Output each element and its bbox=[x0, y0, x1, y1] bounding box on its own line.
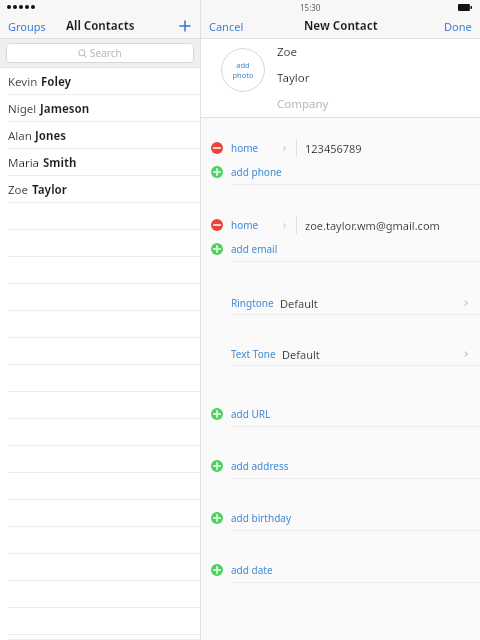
button[interactable] bbox=[0, 365, 200, 392]
staticText: Done bbox=[444, 19, 472, 34]
button[interactable]: Alan bbox=[0, 122, 200, 149]
staticText bbox=[32, 128, 35, 144]
button[interactable] bbox=[0, 473, 200, 500]
staticText: Jameson bbox=[40, 101, 90, 117]
button[interactable]: Zoe bbox=[277, 39, 480, 65]
staticText: 15:30 bbox=[300, 2, 321, 13]
staticText: add URL bbox=[231, 407, 271, 421]
button[interactable]: add date bbox=[201, 558, 480, 582]
staticText: 123456789 bbox=[305, 141, 362, 156]
staticText: Text Tone bbox=[231, 347, 276, 361]
staticText: Company bbox=[277, 96, 329, 112]
button[interactable]: add URL bbox=[201, 402, 480, 426]
button[interactable] bbox=[0, 311, 200, 338]
button[interactable]: Ringtone bbox=[201, 292, 480, 314]
staticText: add date bbox=[231, 563, 273, 577]
staticText: add phone bbox=[231, 165, 282, 179]
staticText: Zoe bbox=[8, 182, 29, 198]
staticText: photo bbox=[232, 70, 254, 80]
button[interactable]: home bbox=[201, 213, 480, 237]
button[interactable]: Cancel bbox=[201, 16, 252, 37]
button[interactable] bbox=[0, 608, 200, 635]
button[interactable]: Done bbox=[436, 16, 480, 37]
button[interactable] bbox=[0, 635, 200, 640]
button[interactable]: Add contact bbox=[170, 17, 200, 35]
staticText: home bbox=[231, 141, 259, 155]
button[interactable]: add birthday bbox=[201, 506, 480, 530]
button[interactable]: Company bbox=[277, 91, 480, 117]
button[interactable] bbox=[0, 554, 200, 581]
button[interactable] bbox=[0, 446, 200, 473]
staticText: New Contact bbox=[304, 18, 378, 34]
button[interactable]: Maria bbox=[0, 149, 200, 176]
staticText: Default bbox=[282, 347, 320, 362]
button[interactable] bbox=[0, 257, 200, 284]
button[interactable]: add phone bbox=[201, 160, 480, 184]
staticText: Nigel bbox=[8, 101, 37, 117]
staticText: Kevin bbox=[8, 74, 38, 90]
button[interactable]: Nigel bbox=[0, 95, 200, 122]
staticText: Ringtone bbox=[231, 296, 274, 310]
button[interactable] bbox=[0, 230, 200, 257]
button[interactable] bbox=[0, 338, 200, 365]
button[interactable] bbox=[0, 500, 200, 527]
button[interactable]: add bbox=[221, 48, 265, 92]
button[interactable] bbox=[0, 581, 200, 608]
staticText: add email bbox=[231, 242, 278, 256]
staticText: zoe.taylor.wm@gmail.com bbox=[305, 218, 440, 233]
staticText: add birthday bbox=[231, 511, 292, 525]
staticText: Zoe bbox=[277, 44, 298, 60]
staticText: Smith bbox=[43, 155, 77, 171]
staticText: All Contacts bbox=[66, 18, 135, 34]
staticText: Taylor bbox=[32, 182, 67, 198]
button[interactable] bbox=[0, 527, 200, 554]
staticText: Alan bbox=[8, 128, 32, 144]
staticText: Search bbox=[90, 46, 122, 60]
button[interactable]: add address bbox=[201, 454, 480, 478]
staticText: home bbox=[231, 218, 259, 232]
button[interactable]: home bbox=[201, 136, 480, 160]
staticText: Jones bbox=[35, 128, 67, 144]
button[interactable] bbox=[0, 203, 200, 230]
staticText: Default bbox=[280, 296, 318, 311]
button[interactable]: Text Tone bbox=[201, 343, 480, 365]
button[interactable]: Taylor bbox=[277, 65, 480, 91]
button[interactable] bbox=[0, 419, 200, 446]
button[interactable]: Search bbox=[6, 43, 194, 63]
staticText: Foley bbox=[41, 74, 72, 90]
staticText: Taylor bbox=[277, 70, 310, 86]
staticText: add bbox=[236, 60, 250, 70]
button[interactable] bbox=[0, 284, 200, 311]
button[interactable]: add email bbox=[201, 237, 480, 261]
staticText: Maria bbox=[8, 155, 40, 171]
button[interactable] bbox=[0, 392, 200, 419]
button[interactable]: Groups bbox=[0, 16, 54, 37]
staticText: Cancel bbox=[209, 19, 244, 34]
button[interactable]: Zoe bbox=[0, 176, 200, 203]
button[interactable]: Kevin bbox=[0, 68, 200, 95]
staticText: Groups bbox=[8, 19, 46, 34]
staticText: add address bbox=[231, 459, 289, 473]
staticText bbox=[37, 101, 40, 117]
